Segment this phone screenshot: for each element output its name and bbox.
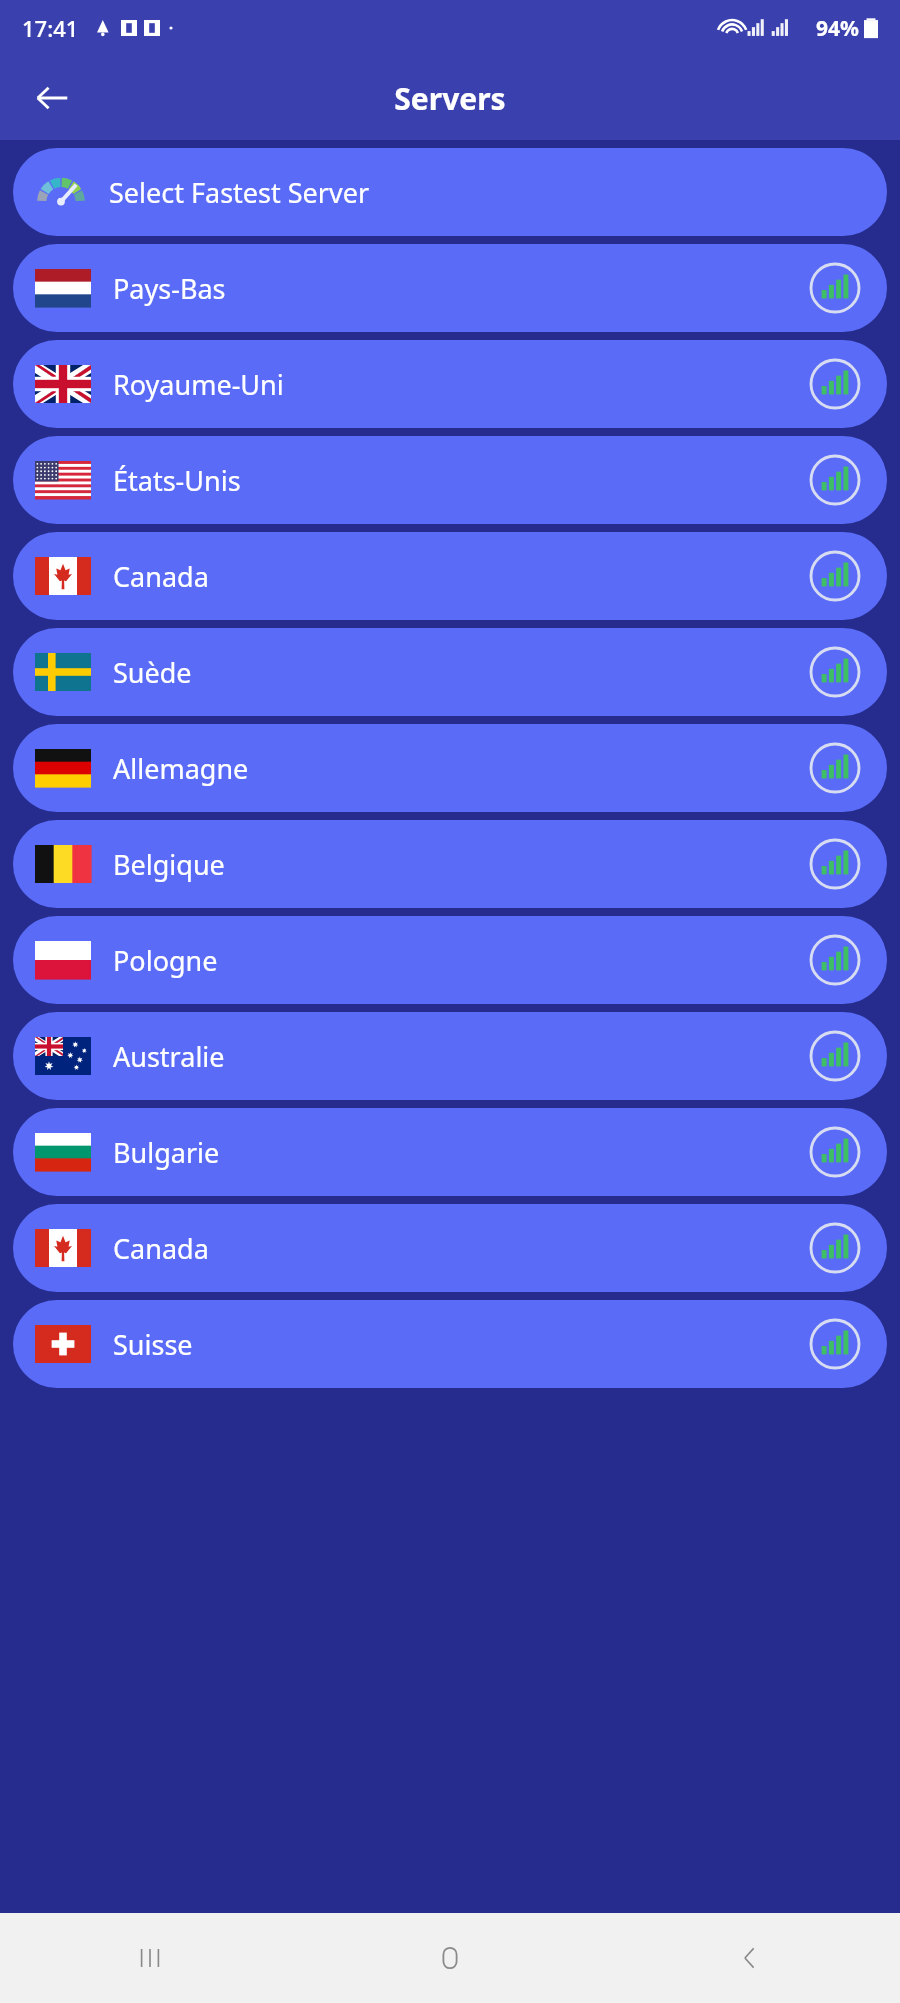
button[interactable]: Select Fastest Server	[13, 148, 887, 236]
other: Signal strength	[809, 262, 861, 314]
button[interactable]: États-Unis	[13, 436, 887, 524]
other: Signal strength	[809, 646, 861, 698]
button[interactable]: Pologne	[13, 916, 887, 1004]
other: Signal strength	[809, 1030, 861, 1082]
other: Signal strength	[809, 1318, 861, 1370]
button[interactable]: Canada	[13, 1204, 887, 1292]
staticText: Pays-Bas	[113, 270, 226, 307]
other: Signal strength	[809, 934, 861, 986]
staticText: Pologne	[113, 942, 218, 979]
other: Signal strength	[809, 838, 861, 890]
other: Signal strength	[809, 742, 861, 794]
other: Signal strength	[809, 550, 861, 602]
button[interactable]: Bulgarie	[13, 1108, 887, 1196]
other: Signal strength	[809, 1126, 861, 1178]
staticText: 94%	[816, 14, 859, 43]
button[interactable]: Belgique	[13, 820, 887, 908]
other: Signal strength	[809, 358, 861, 410]
other: Signal strength	[809, 1222, 861, 1274]
staticText: Canada	[113, 558, 209, 595]
button[interactable]: Canada	[13, 532, 887, 620]
button[interactable]: Suisse	[13, 1300, 887, 1388]
button[interactable]: Australie	[13, 1012, 887, 1100]
staticText: Canada	[113, 1230, 209, 1267]
staticText: Suisse	[113, 1326, 193, 1363]
staticText: Allemagne	[113, 750, 249, 787]
staticText: Australie	[113, 1038, 225, 1075]
button[interactable]: Royaume-Uni	[13, 340, 887, 428]
staticText: 17:41	[22, 13, 79, 43]
button[interactable]: Allemagne	[13, 724, 887, 812]
staticText: Servers	[394, 78, 506, 119]
staticText: Select Fastest Server	[109, 174, 370, 211]
staticText: Bulgarie	[113, 1134, 220, 1171]
button[interactable]: Home	[300, 1913, 600, 2003]
button[interactable]: Pays-Bas	[13, 244, 887, 332]
staticText: États-Unis	[113, 462, 241, 499]
button[interactable]: Back	[20, 66, 84, 130]
button[interactable]: Suède	[13, 628, 887, 716]
button[interactable]: Back	[600, 1913, 900, 2003]
staticText: Belgique	[113, 846, 225, 883]
button[interactable]: Recents	[0, 1913, 300, 2003]
other: Signal strength	[809, 454, 861, 506]
staticText: Royaume-Uni	[113, 366, 284, 403]
staticText: Suède	[113, 654, 192, 691]
